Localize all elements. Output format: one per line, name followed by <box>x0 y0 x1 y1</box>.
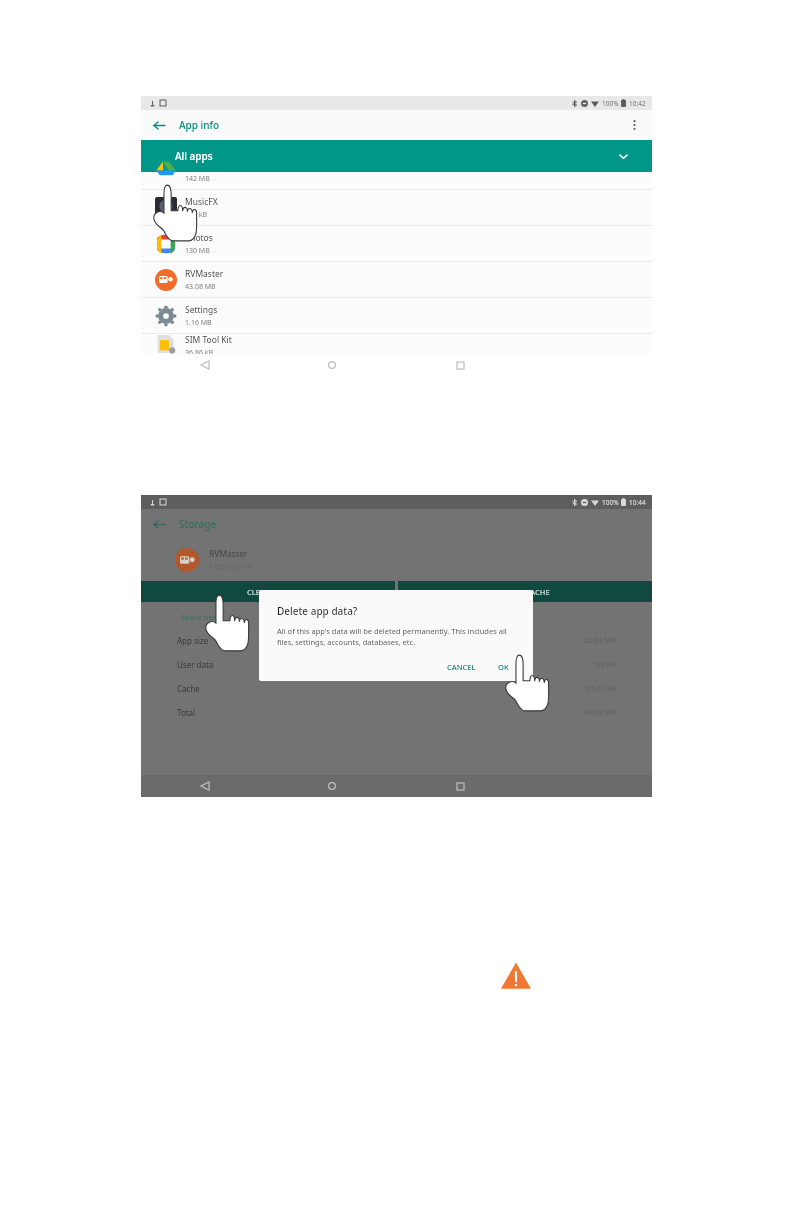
button[interactable]: Photos <box>141 226 652 261</box>
staticText: 69.63 kB <box>586 683 616 693</box>
staticText: Photos <box>185 232 213 244</box>
staticText: User data <box>177 659 214 670</box>
staticText: App size <box>177 635 209 646</box>
staticText: 1.16 MB <box>185 318 212 328</box>
button[interactable]: Home <box>321 775 343 797</box>
staticText: 36.86 kB <box>185 348 213 354</box>
staticText: 100% <box>602 498 619 507</box>
button[interactable]: Home <box>321 354 343 376</box>
staticText: 43.08 MB <box>583 707 616 717</box>
staticText: CLEAR DATA <box>247 587 290 597</box>
staticText: Total <box>177 707 196 718</box>
staticText: 100% <box>602 99 619 108</box>
staticText: 180 kB <box>592 659 616 669</box>
staticText: 1.0(6130)-cnc <box>209 562 253 572</box>
staticText: CANCEL <box>447 662 476 672</box>
staticText: 10:42 <box>629 99 646 108</box>
button[interactable]: Back <box>147 512 171 536</box>
staticText: All of this app's data will be deleted p… <box>277 626 515 647</box>
button[interactable]: Recents <box>449 775 471 797</box>
staticText: OK <box>498 662 509 672</box>
staticText: Settings <box>185 304 218 316</box>
button[interactable]: Back <box>194 775 216 797</box>
staticText: Cache <box>177 683 200 694</box>
staticText: Delete app data? <box>277 604 358 618</box>
button[interactable]: CANCEL <box>441 659 482 675</box>
button[interactable]: RVMaster <box>141 262 652 297</box>
button[interactable]: Back <box>147 113 171 137</box>
staticText: 130 MB <box>185 246 210 256</box>
button[interactable]: OK <box>492 659 515 675</box>
staticText: App info <box>179 118 220 132</box>
staticText: 42.83 MB <box>583 635 616 645</box>
staticText: 142 MB <box>185 174 210 184</box>
button[interactable]: All apps <box>141 140 652 172</box>
staticText: 274 kB <box>185 210 208 220</box>
button[interactable]: Settings <box>141 298 652 333</box>
button[interactable]: Back <box>194 354 216 376</box>
staticText: Space used <box>181 612 221 622</box>
staticText: Storage <box>179 517 217 531</box>
staticText: 10:44 <box>629 498 646 507</box>
staticText: CLEAR CACHE <box>501 587 550 597</box>
staticText: All apps <box>175 149 213 163</box>
button[interactable]: Recents <box>449 354 471 376</box>
button[interactable]: CLEAR CACHE <box>398 581 652 602</box>
button[interactable]: SIM Tool Kit <box>141 334 652 354</box>
staticText: MusicFX <box>185 196 218 208</box>
staticText: 43.08 MB <box>185 282 216 292</box>
button[interactable]: More options <box>622 113 646 137</box>
staticText: RVMaster <box>185 268 224 280</box>
staticText: RVMaster <box>209 548 248 560</box>
button[interactable]: CLEAR DATA <box>141 581 395 602</box>
button[interactable]: MusicFX <box>141 190 652 225</box>
staticText: SIM Tool Kit <box>185 334 232 346</box>
